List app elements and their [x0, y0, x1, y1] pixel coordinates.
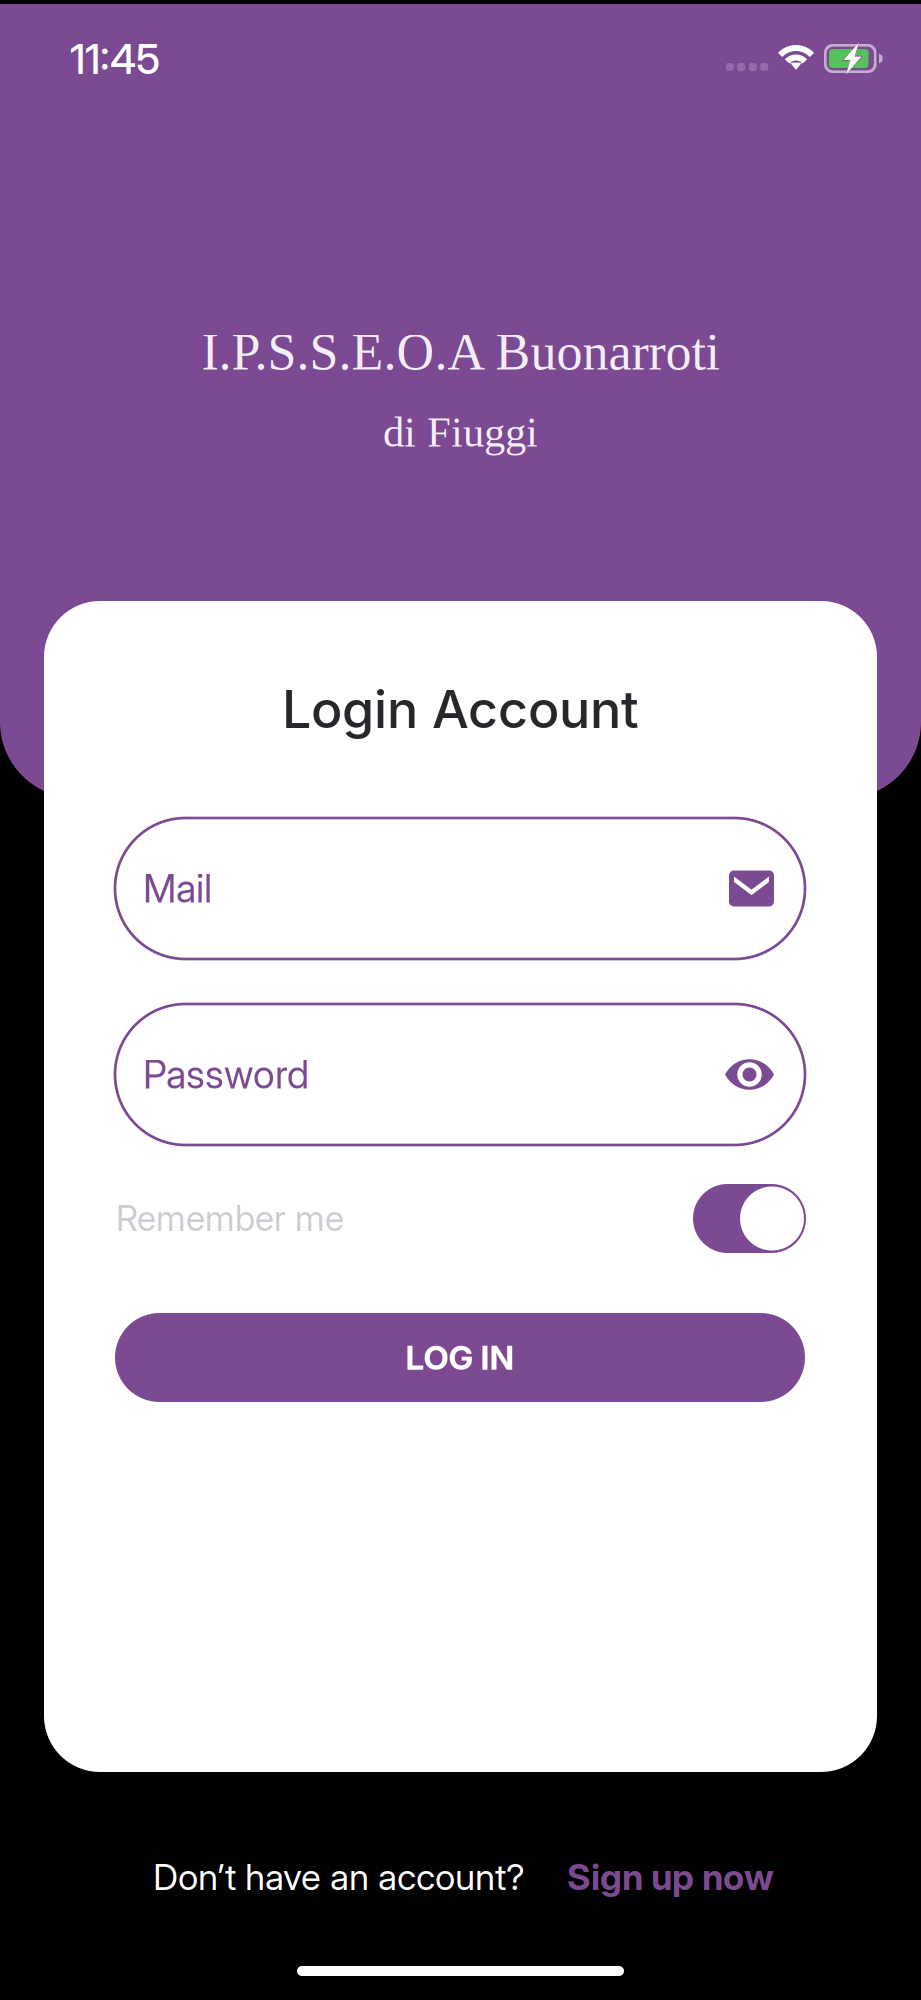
staticText: Don’t have an account?	[153, 1855, 525, 1899]
staticText: Remember me	[116, 1197, 344, 1239]
button[interactable]: Remember me	[693, 1184, 806, 1253]
staticText: Password	[143, 1051, 309, 1098]
staticText: di Fiuggi	[383, 408, 538, 456]
staticText: 11:45	[70, 34, 160, 84]
staticText: Mail	[143, 865, 212, 912]
button[interactable]: Sign up now	[567, 1855, 774, 1899]
staticText: Login Account	[282, 677, 639, 740]
staticText: Sign up now	[567, 1855, 774, 1899]
button[interactable]: Mail	[115, 818, 805, 959]
button[interactable]: Password	[115, 1004, 805, 1145]
button[interactable]: LOG IN	[115, 1313, 805, 1402]
staticText: LOG IN	[405, 1337, 514, 1378]
staticText: I.P.S.S.E.O.A Buonarroti	[201, 323, 719, 381]
